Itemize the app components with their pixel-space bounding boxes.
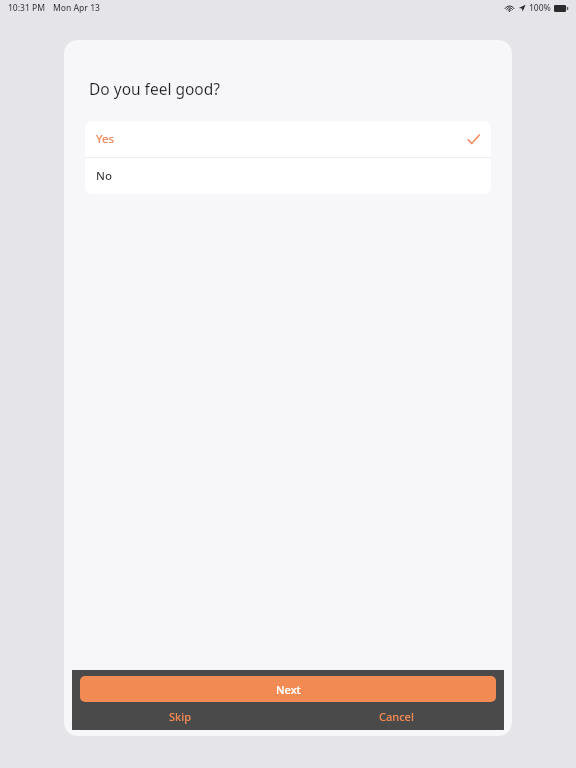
staticText: 100% xyxy=(529,2,551,14)
staticText: Skip xyxy=(169,709,191,724)
staticText: 10:31 PM xyxy=(8,2,45,14)
button[interactable]: No xyxy=(85,158,491,194)
button[interactable]: Next xyxy=(80,676,496,702)
button[interactable]: Cancel xyxy=(288,702,504,730)
staticText: Mon Apr 13 xyxy=(53,2,100,14)
staticText: Do you feel good? xyxy=(89,78,221,99)
staticText: No xyxy=(96,168,112,184)
staticText: Next xyxy=(276,682,301,697)
button[interactable]: Skip xyxy=(72,702,288,730)
button[interactable]: Yes xyxy=(85,121,491,157)
staticText: Cancel xyxy=(379,709,414,724)
staticText: Yes xyxy=(96,131,114,147)
